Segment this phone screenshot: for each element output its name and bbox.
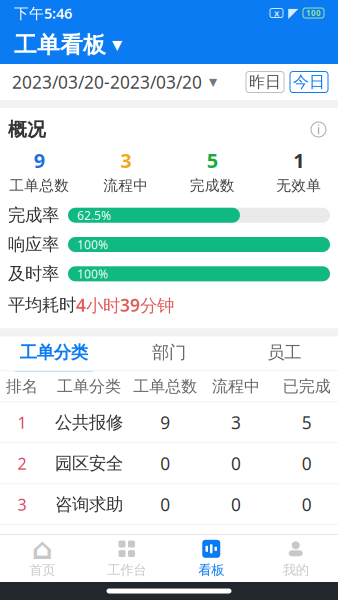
button[interactable]: 工单分类 (0, 336, 111, 370)
staticText: 流程中 (103, 177, 148, 195)
staticText: 100 (306, 8, 321, 18)
staticText: 0 (160, 452, 170, 475)
staticText: 5 (207, 147, 218, 174)
staticText: 工单分类 (57, 377, 121, 396)
staticText: 0 (231, 534, 241, 557)
staticText: 已完成 (283, 377, 331, 396)
staticText: 2 (17, 453, 26, 474)
staticText: 无效单 (276, 177, 321, 195)
staticText: 员工 (267, 342, 301, 363)
staticText: 9 (160, 411, 170, 434)
staticText: 0 (160, 534, 170, 557)
staticText: 工单总数 (9, 177, 69, 195)
staticText: 0 (302, 534, 312, 557)
staticText: 及时率 (8, 263, 59, 284)
staticText: ⌂ (32, 532, 53, 565)
staticText: 工单分类 (20, 342, 88, 363)
staticText: 排名 (6, 377, 38, 396)
button[interactable]: 员工 (227, 336, 338, 370)
button[interactable]: 工单看板 (0, 25, 136, 65)
staticText: 5 (302, 411, 312, 434)
staticText: 我的 (283, 562, 309, 578)
staticText: 完成数 (190, 177, 235, 195)
staticText: i (317, 121, 320, 137)
staticText: 公共报修 (55, 412, 123, 433)
staticText: 昨日 (249, 72, 281, 92)
button[interactable]: 昨日 (246, 71, 284, 92)
staticText: 下午5:46 (14, 3, 72, 23)
staticText: 0 (231, 452, 241, 475)
staticText: 0 (302, 493, 312, 516)
button[interactable]: 2023/03/20-2023/03/20 (0, 62, 229, 101)
staticText: 完成率 (8, 205, 59, 226)
staticText: 1 (293, 147, 304, 174)
staticText: 概况 (8, 118, 46, 141)
staticText: ◤ (288, 5, 298, 20)
button[interactable]: 部门 (111, 336, 227, 370)
staticText: 3 (120, 147, 131, 174)
button[interactable]: 看板 (169, 535, 253, 582)
button[interactable]: 工作台 (84, 535, 169, 582)
staticText: 工作台 (107, 562, 146, 578)
button[interactable]: 我的 (253, 535, 338, 582)
staticText: 4小时39分钟 (76, 293, 174, 316)
staticText: 园区安全 (55, 453, 123, 474)
staticText: 3 (231, 411, 241, 434)
staticText: 今日 (293, 72, 325, 92)
staticText: ▼ (209, 76, 217, 88)
staticText: 设备报修 (55, 535, 123, 556)
staticText: 62.5% (77, 207, 111, 223)
staticText: 看板 (198, 562, 224, 578)
staticText: 咨询求助 (55, 494, 123, 515)
staticText: 2023/03/20-2023/03/20 (12, 70, 202, 93)
staticText: 0 (160, 493, 170, 516)
staticText: 100% (77, 266, 108, 282)
button[interactable]: ⌂ (0, 535, 84, 582)
staticText: 工单看板 (14, 31, 106, 59)
staticText: x (274, 7, 279, 19)
staticText: ▼ (112, 37, 122, 52)
staticText: 平均耗时 (8, 294, 76, 316)
staticText: 首页 (29, 562, 55, 578)
staticText: 工单总数 (133, 377, 197, 396)
staticText: 流程中 (212, 377, 260, 396)
staticText: 100% (77, 236, 108, 252)
button[interactable]: 今日 (290, 71, 328, 92)
staticText: 0 (231, 493, 241, 516)
staticText: 1 (17, 412, 26, 433)
staticText: 0 (302, 452, 312, 475)
staticText: 9 (34, 147, 45, 174)
staticText: 3 (17, 494, 26, 515)
button[interactable]: 说明 (307, 118, 330, 141)
staticText: 响应率 (8, 234, 59, 255)
staticText: 部门 (152, 342, 186, 363)
